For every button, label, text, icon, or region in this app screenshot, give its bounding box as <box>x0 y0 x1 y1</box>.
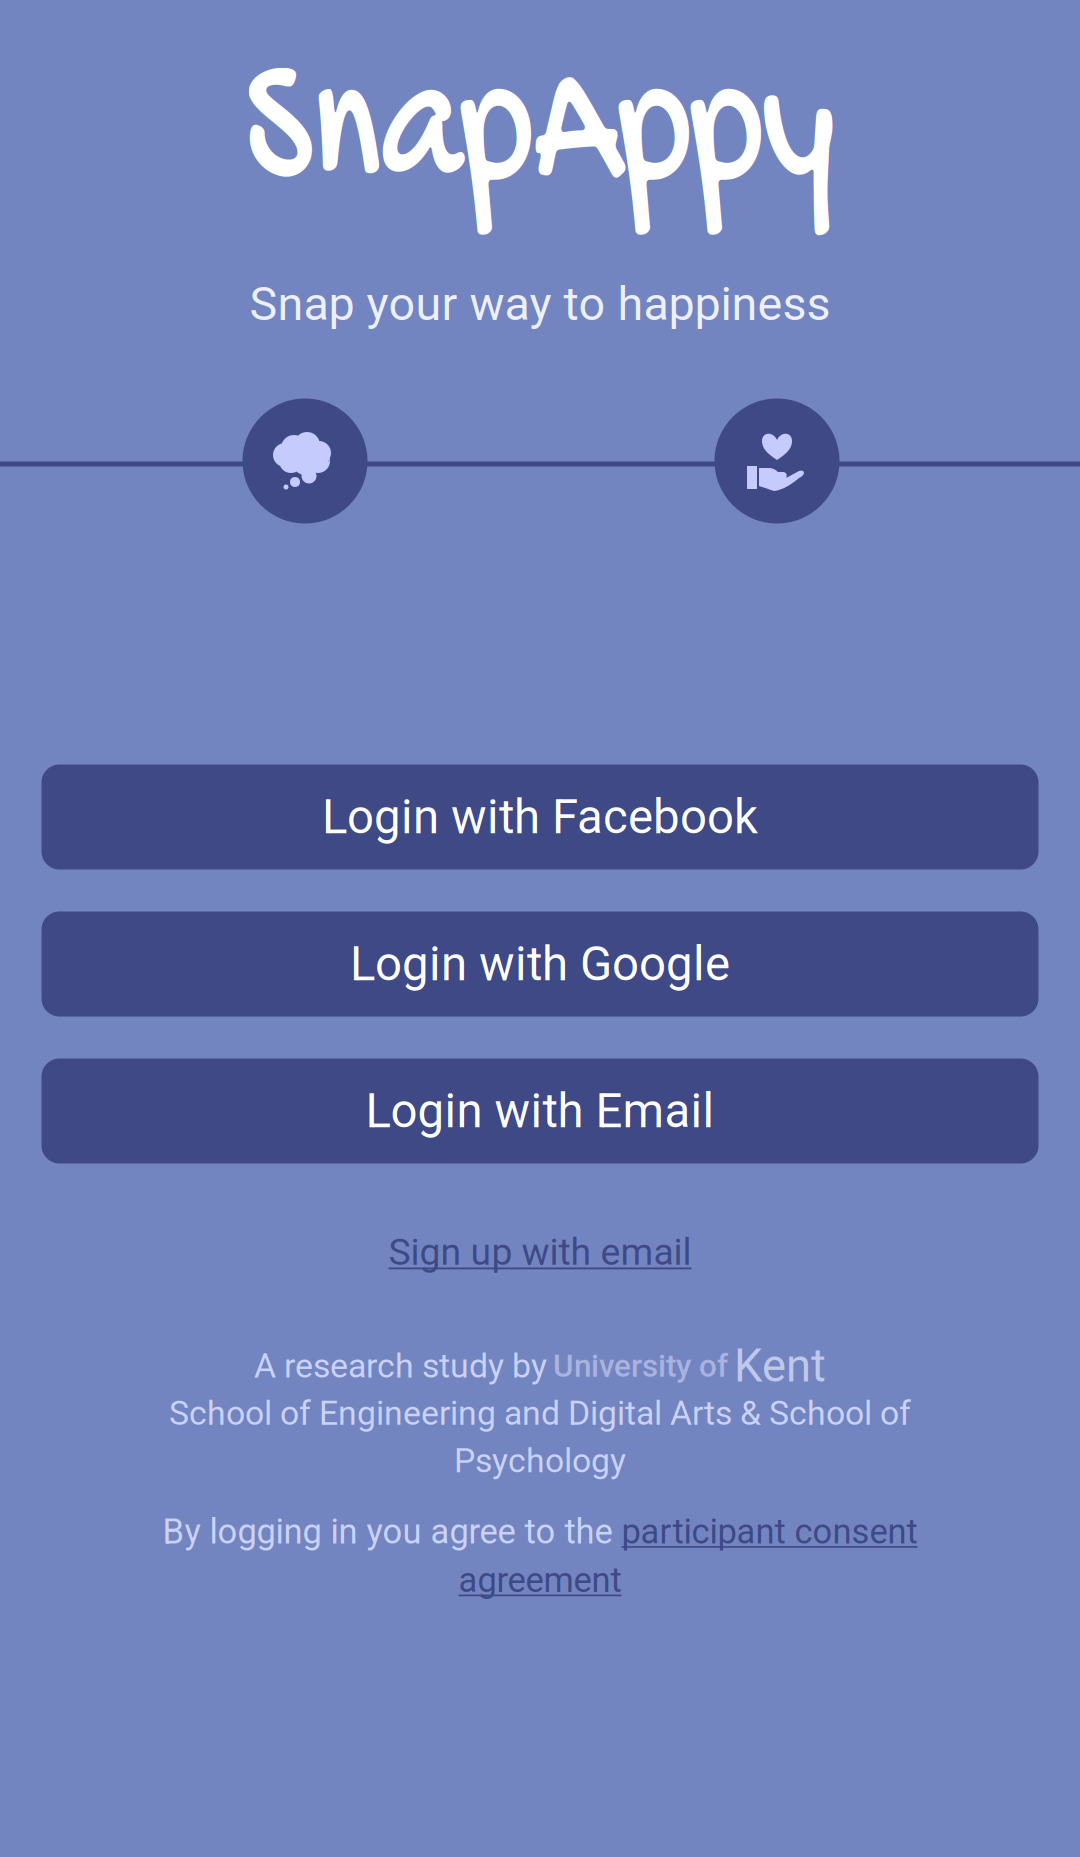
button[interactable]: Login with Email <box>41 1058 1038 1163</box>
button[interactable]: participant consent <box>621 1511 917 1552</box>
button[interactable]: Login with Google <box>41 911 1038 1016</box>
staticText: SnapAppy <box>244 51 835 223</box>
button[interactable]: Login with Facebook <box>41 764 1038 869</box>
staticText: A research study by <box>254 1346 547 1386</box>
staticText: University of <box>553 1348 728 1384</box>
staticText: Login with Google <box>350 936 730 992</box>
staticText: Sign up with email <box>388 1230 691 1274</box>
staticText: By logging in you agree to the <box>162 1511 621 1552</box>
staticText: School of Engineering and Digital Arts &… <box>169 1393 911 1433</box>
staticText: agreement <box>458 1560 621 1600</box>
button[interactable]: Wellbeing <box>714 398 839 523</box>
button[interactable]: Sign up with email <box>388 1230 691 1274</box>
staticText: Snap your way to happiness <box>249 277 830 331</box>
staticText: Login with Email <box>365 1083 714 1139</box>
staticText: participant consent <box>621 1511 917 1552</box>
button[interactable]: agreement <box>458 1560 621 1600</box>
staticText: Psychology <box>454 1441 626 1480</box>
staticText: Kent <box>734 1339 826 1392</box>
button[interactable]: Thoughts <box>242 398 367 523</box>
staticText: Login with Facebook <box>322 789 758 845</box>
